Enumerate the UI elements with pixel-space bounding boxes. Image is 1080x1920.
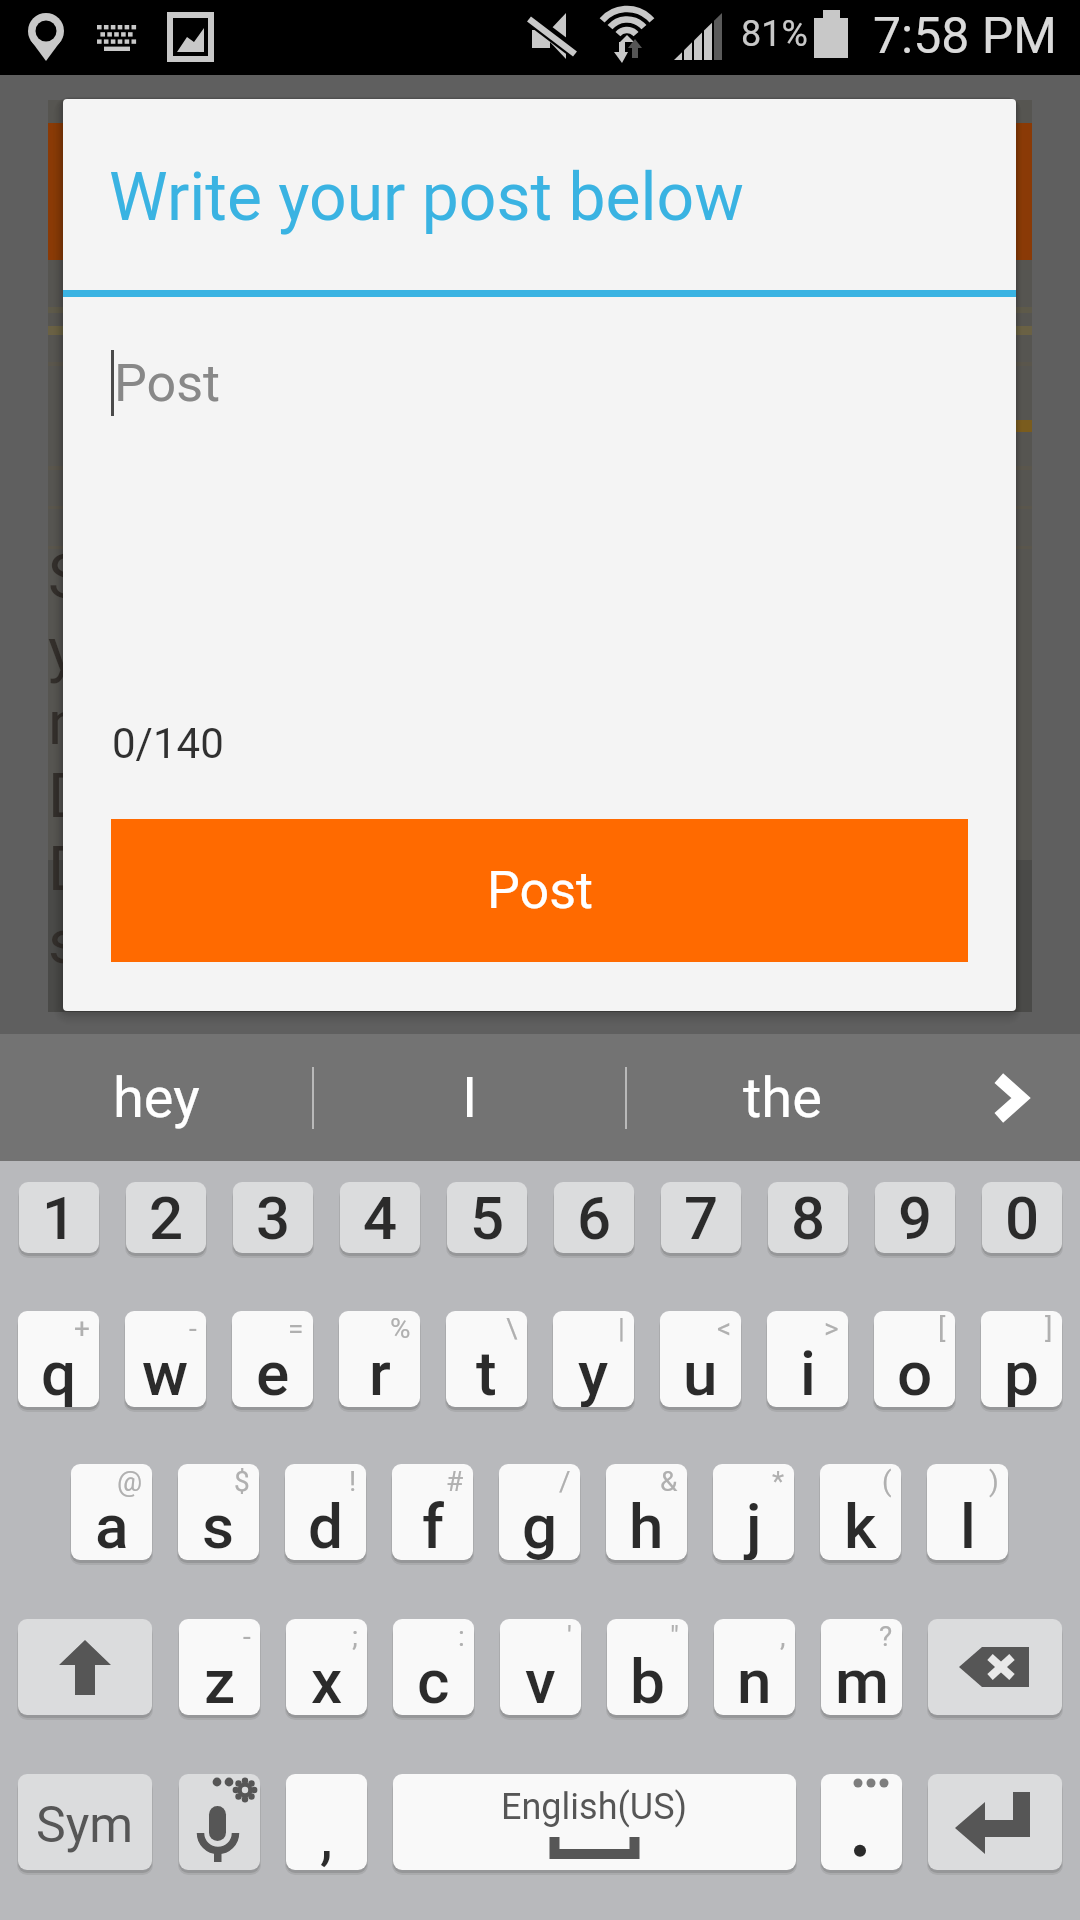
staticText: - <box>189 1312 197 1345</box>
staticText: the <box>743 1065 822 1131</box>
staticText: Write your post below <box>109 159 744 236</box>
staticText: , <box>320 1799 333 1870</box>
staticText: < <box>717 1312 732 1345</box>
button[interactable]: n <box>714 1619 795 1715</box>
button[interactable]: k <box>820 1464 901 1560</box>
staticText: k <box>844 1490 877 1560</box>
button[interactable]: l <box>927 1464 1008 1560</box>
button[interactable]: Space <box>393 1774 796 1870</box>
staticText: c <box>417 1645 450 1715</box>
button[interactable]: r <box>339 1311 420 1407</box>
button[interactable]: e <box>232 1311 313 1407</box>
staticText: i <box>800 1337 816 1407</box>
button[interactable]: Shift <box>18 1619 152 1715</box>
button[interactable]: More suggestions <box>938 1034 1080 1161</box>
staticText: & <box>660 1465 678 1498</box>
button[interactable]: Voice input <box>179 1774 260 1870</box>
staticText: j <box>746 1490 762 1560</box>
staticText: q <box>41 1337 77 1407</box>
button[interactable]: 9 <box>875 1182 955 1253</box>
button[interactable]: z <box>179 1619 260 1715</box>
staticText: [ <box>938 1312 946 1345</box>
staticText: 5 <box>470 1183 505 1253</box>
button[interactable]: t <box>446 1311 527 1407</box>
staticText: 2 <box>149 1183 184 1253</box>
staticText: , <box>780 1620 786 1653</box>
button[interactable]: , <box>286 1774 367 1870</box>
button[interactable]: a <box>71 1464 152 1560</box>
button[interactable]: 1 <box>19 1182 99 1253</box>
button[interactable]: 4 <box>340 1182 420 1253</box>
staticText: - <box>243 1620 251 1653</box>
button[interactable]: hey <box>0 1034 312 1161</box>
staticText: 8 <box>791 1183 826 1253</box>
button[interactable]: the <box>627 1034 938 1161</box>
staticText: hey <box>113 1065 200 1131</box>
staticText: m <box>835 1645 889 1715</box>
button[interactable]: u <box>660 1311 741 1407</box>
button[interactable]: I <box>314 1034 625 1161</box>
button[interactable]: Backspace <box>928 1619 1062 1715</box>
staticText: $ <box>234 1465 250 1498</box>
staticText: 0/140 <box>112 719 224 768</box>
button[interactable]: 2 <box>126 1182 206 1253</box>
staticText: Send <box>48 540 187 613</box>
staticText: > <box>824 1312 839 1345</box>
staticText: v <box>525 1645 556 1715</box>
staticText: " <box>670 1620 679 1653</box>
button[interactable]: c <box>393 1619 474 1715</box>
staticText: 0 <box>1005 1183 1040 1253</box>
button[interactable]: w <box>125 1311 206 1407</box>
staticText: x <box>311 1645 343 1715</box>
staticText: / <box>559 1465 571 1498</box>
button[interactable]: v <box>500 1619 581 1715</box>
button[interactable]: b <box>607 1619 688 1715</box>
button[interactable]: j <box>713 1464 794 1560</box>
button[interactable]: 6 <box>554 1182 634 1253</box>
button[interactable]: o <box>874 1311 955 1407</box>
button[interactable]: y <box>553 1311 634 1407</box>
staticText: b <box>630 1645 665 1715</box>
staticText: d <box>308 1490 344 1560</box>
button[interactable]: 7 <box>661 1182 741 1253</box>
staticText: 7 <box>684 1183 719 1253</box>
staticText: % <box>390 1312 411 1345</box>
staticText: ; <box>352 1620 358 1653</box>
button[interactable]: Post <box>111 819 968 962</box>
button[interactable]: x <box>286 1619 367 1715</box>
button[interactable]: 3 <box>233 1182 313 1253</box>
staticText: t <box>476 1337 497 1407</box>
staticText: 3 <box>256 1183 291 1253</box>
staticText: 7:58 PM <box>873 7 1058 66</box>
staticText: ) <box>989 1465 999 1498</box>
button[interactable]: h <box>606 1464 687 1560</box>
button[interactable]: 0 <box>982 1182 1062 1253</box>
staticText: Post <box>487 860 593 921</box>
button[interactable]: p <box>981 1311 1062 1407</box>
button[interactable]: q <box>18 1311 99 1407</box>
button[interactable]: Period <box>821 1774 902 1870</box>
button[interactable]: Sym <box>18 1774 152 1870</box>
staticText: u <box>683 1337 718 1407</box>
staticText: Dont <box>48 759 179 832</box>
button[interactable]: 8 <box>768 1182 848 1253</box>
staticText: s <box>202 1490 235 1560</box>
button[interactable]: i <box>767 1311 848 1407</box>
button[interactable]: 5 <box>447 1182 527 1253</box>
staticText: I <box>462 1065 478 1131</box>
button[interactable]: m <box>821 1619 902 1715</box>
staticText: ' <box>567 1620 572 1653</box>
staticText: 1 <box>42 1183 77 1253</box>
button[interactable]: f <box>392 1464 473 1560</box>
staticText: * <box>772 1465 785 1498</box>
staticText: # <box>446 1465 464 1498</box>
staticText: n <box>737 1645 772 1715</box>
button[interactable]: g <box>499 1464 580 1560</box>
staticText: your <box>48 613 168 686</box>
staticText: Dont <box>48 832 179 905</box>
button[interactable]: s <box>178 1464 259 1560</box>
staticText: g <box>522 1490 558 1560</box>
staticText: 81% <box>741 13 808 55</box>
button[interactable]: d <box>285 1464 366 1560</box>
button[interactable]: Enter <box>928 1774 1062 1870</box>
